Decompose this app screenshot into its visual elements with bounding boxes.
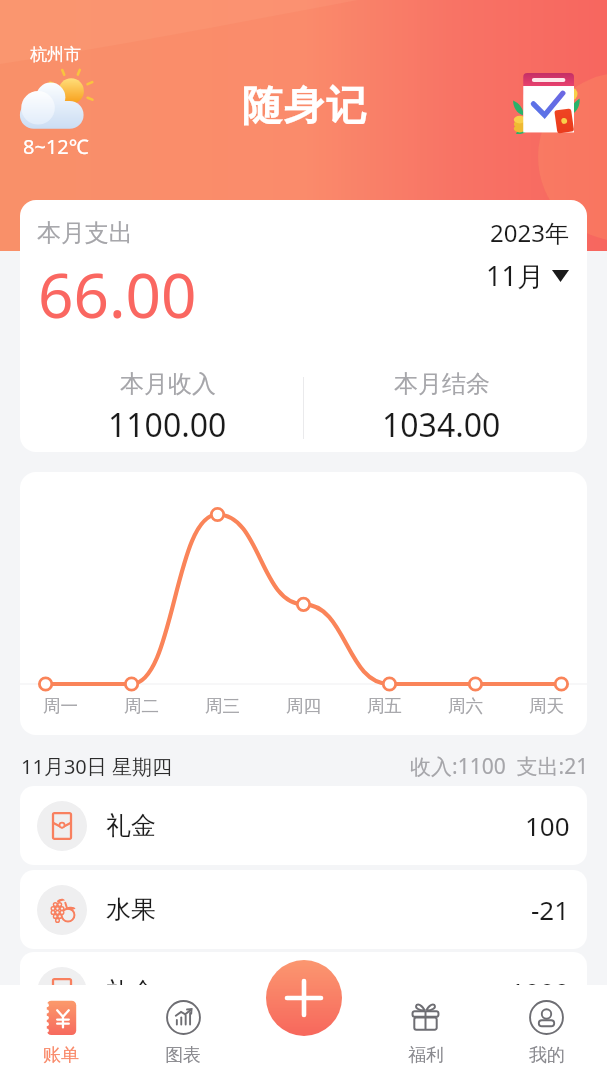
staticText: 随身记 <box>241 80 367 130</box>
button[interactable]: 账单 <box>0 985 122 1067</box>
staticText: 周六 <box>448 695 483 717</box>
button[interactable]: 礼金 <box>20 786 587 865</box>
staticText: 周五 <box>367 695 402 717</box>
staticText: 收入:1100 支出:21 <box>410 752 589 781</box>
staticText: 100 <box>525 808 570 843</box>
staticText: 8~12℃ <box>23 133 89 160</box>
staticText: -21 <box>531 892 570 927</box>
staticText: 福利 <box>408 1044 444 1067</box>
button[interactable]: 福利 <box>365 985 486 1067</box>
button[interactable]: 礼金 <box>20 952 587 1031</box>
staticText: 周三 <box>205 695 240 717</box>
staticText: 账单 <box>43 1044 79 1067</box>
button[interactable]: Weather in Hangzhou, 8 to 12 degrees <box>14 38 104 163</box>
staticText: 周二 <box>124 695 159 717</box>
button[interactable]: 图表 <box>122 985 244 1067</box>
staticText: 1034.00 <box>382 403 501 447</box>
staticText: 周一 <box>43 695 78 717</box>
staticText: 本月支出 <box>37 218 133 248</box>
staticText: 我的 <box>529 1044 565 1067</box>
button[interactable]: 水果 <box>20 870 587 949</box>
staticText: 周天 <box>529 695 564 717</box>
staticText: 水果 <box>106 894 156 925</box>
staticText: 1100.00 <box>108 403 227 447</box>
staticText: 2023年 <box>490 216 569 249</box>
button[interactable]: Add record <box>266 960 342 1036</box>
button[interactable]: Daily check-in <box>511 71 581 135</box>
staticText: 本月收入 <box>120 369 216 399</box>
staticText: 图表 <box>165 1044 201 1067</box>
staticText: 杭州市 <box>30 44 81 65</box>
staticText: 礼金 <box>106 976 156 1007</box>
button[interactable]: 本月支出 <box>20 200 587 452</box>
staticText: 礼金 <box>106 810 156 841</box>
staticText: 1000 <box>510 974 570 1009</box>
staticText: 66.00 <box>38 252 197 336</box>
staticText: 本月结余 <box>394 369 490 399</box>
staticText: 周四 <box>286 695 321 717</box>
button[interactable]: 我的 <box>486 985 607 1067</box>
staticText: 11月30日 星期四 <box>21 753 172 780</box>
staticText: 11月 <box>486 257 544 294</box>
